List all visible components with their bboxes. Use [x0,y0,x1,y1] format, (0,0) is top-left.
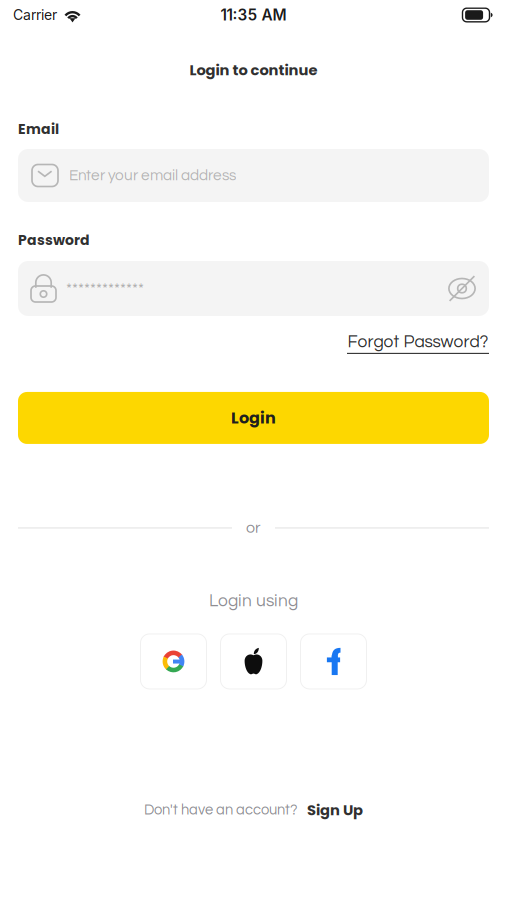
button[interactable]: Continue with Google [140,634,206,689]
staticText: 11:35 AM [220,6,286,24]
staticText: ************* [66,280,144,297]
staticText: Email [18,119,59,139]
staticText: Carrier [13,6,57,23]
staticText: Forgot Password? [347,333,488,351]
staticText: Login to continue [189,60,317,80]
staticText: Don't have an account? [144,802,297,817]
staticText: Enter your email address [69,168,236,183]
button[interactable]: Forgot Password? [347,333,489,354]
staticText: or [246,520,261,536]
staticText: Login [231,407,276,429]
staticText: Password [18,230,90,250]
button[interactable]: Login [18,392,489,444]
staticText: Sign Up [307,800,363,820]
button[interactable]: Continue with Apple [220,634,286,689]
button[interactable]: Continue with Facebook [300,634,366,689]
staticText: Login using [209,592,298,610]
button[interactable]: Sign Up [307,800,363,820]
button[interactable]: Show password [448,274,476,302]
